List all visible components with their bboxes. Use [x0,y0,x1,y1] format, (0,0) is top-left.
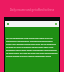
button[interactable]: Logo [7,21,57,27]
staticText: Daily resume and get afford to these [5,8,59,12]
staticText: Sed ut perspiciatis unde omnis iste natu… [6,37,58,58]
